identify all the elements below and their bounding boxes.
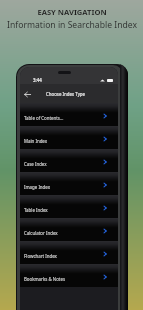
- staticText: Flowchart Index: [24, 253, 57, 259]
- button[interactable]: Flowchart Index: [20, 241, 118, 264]
- staticText: Image Index: [24, 184, 50, 190]
- staticText: Case Index: [24, 161, 47, 167]
- button[interactable]: Table of Contents...: [20, 103, 118, 126]
- button[interactable]: Calculator Index: [20, 218, 118, 241]
- button[interactable]: Image Index: [20, 172, 118, 195]
- button[interactable]: Back: [21, 88, 33, 100]
- staticText: 3:44: [33, 77, 42, 83]
- staticText: Bookmarks & Notes: [24, 276, 65, 282]
- button[interactable]: Main Index: [20, 126, 118, 149]
- button[interactable]: Case Index: [20, 149, 118, 172]
- staticText: Table Index: [24, 207, 48, 213]
- staticText: Calculator Index: [24, 230, 58, 236]
- button[interactable]: Bookmarks & Notes: [20, 264, 118, 287]
- staticText: Choose Index Type: [46, 91, 86, 97]
- button[interactable]: Table Index: [20, 195, 118, 218]
- button[interactable]: Back: [20, 84, 118, 103]
- staticText: Table of Contents...: [24, 115, 64, 121]
- staticText: EASY NAVIGATION: [37, 7, 107, 17]
- staticText: Information in Searchable Index: [7, 19, 137, 31]
- staticText: Main Index: [24, 138, 48, 144]
